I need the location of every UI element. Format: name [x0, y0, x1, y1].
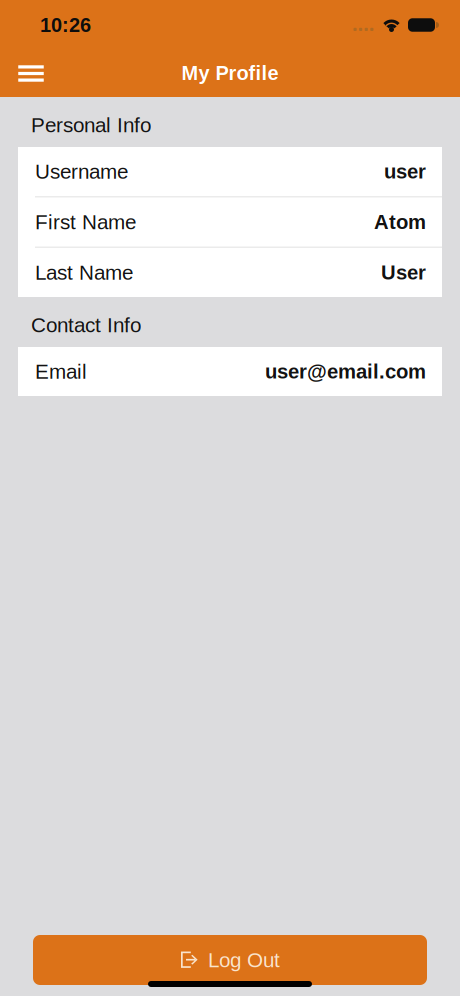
staticText: user	[384, 161, 426, 182]
staticText: 10:26	[40, 14, 91, 36]
staticText: Username	[35, 160, 128, 182]
staticText: Log Out	[208, 949, 280, 971]
staticText: My Profile	[181, 62, 278, 84]
staticText: Last Name	[35, 261, 133, 283]
staticText: Email	[35, 360, 87, 382]
button[interactable]: First Name	[18, 197, 442, 246]
staticText: user@email.com	[265, 361, 426, 382]
staticText: Personal Info	[31, 114, 151, 136]
button[interactable]: Log Out	[33, 935, 427, 985]
staticText: First Name	[35, 211, 136, 233]
button[interactable]: Menu	[9, 51, 53, 95]
button[interactable]: Username	[18, 147, 442, 196]
staticText: Atom	[374, 211, 426, 233]
button[interactable]: Last Name	[18, 248, 442, 297]
staticText: User	[381, 262, 426, 283]
staticText: Contact Info	[31, 314, 141, 336]
button[interactable]: Email	[18, 347, 442, 396]
